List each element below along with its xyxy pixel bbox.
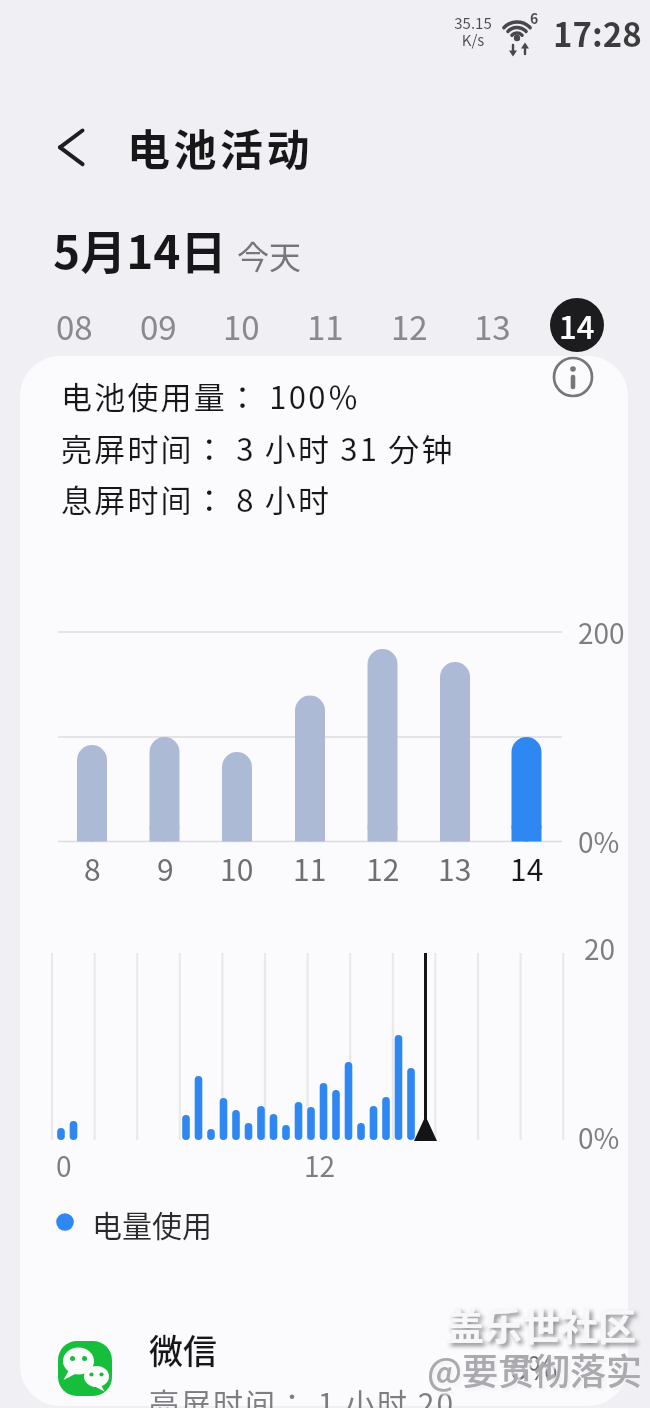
staticText: 35.15 K/s <box>454 12 492 50</box>
staticText: 盖乐世社区 <box>446 1296 637 1351</box>
button[interactable]: 14 <box>550 298 604 352</box>
staticText: 10 <box>223 302 260 350</box>
button[interactable] <box>48 124 94 170</box>
staticText: 电池活动 <box>127 116 313 178</box>
staticText: 5月14日 <box>53 216 227 283</box>
staticText: 0 <box>56 1145 72 1186</box>
staticText: 0% <box>578 1117 620 1158</box>
staticText: 6 <box>530 8 539 28</box>
staticText: 13 <box>474 302 511 350</box>
button[interactable]: 08 <box>0 281 224 371</box>
button[interactable]: 12 <box>259 281 559 371</box>
staticText: @要贯彻落实 <box>427 1343 642 1395</box>
staticText: 亮屏时间： 3 小时 31 分钟 <box>61 425 455 470</box>
staticText: 电池使用量： 100％ <box>61 373 361 418</box>
staticText: 电量使用 <box>92 1202 212 1245</box>
staticText: 微信 <box>149 1325 217 1374</box>
staticText: 20 <box>584 928 616 969</box>
staticText: 13 <box>438 846 472 889</box>
staticText: 9 <box>157 846 174 889</box>
staticText: 息屏时间： 8 小时 <box>61 476 332 521</box>
staticText: 8 <box>84 846 101 889</box>
button[interactable]: 11 <box>175 281 475 371</box>
button[interactable] <box>40 1330 620 1406</box>
staticText: 11 <box>293 846 327 889</box>
button[interactable]: 13 <box>342 281 642 371</box>
staticText: 12 <box>304 1145 336 1186</box>
button[interactable]: 10 <box>91 281 391 371</box>
staticText: 14 <box>510 846 544 889</box>
button[interactable]: 09 <box>8 281 308 371</box>
staticText: 17:28 <box>553 9 642 57</box>
staticText: 0% <box>578 821 620 862</box>
staticText: 亮屏时间： 1 小时 20 <box>149 1380 456 1408</box>
staticText: 08 <box>56 302 93 350</box>
staticText: 6% <box>509 1342 558 1390</box>
button[interactable] <box>551 355 595 399</box>
staticText: 12 <box>366 846 400 889</box>
staticText: 12 <box>391 302 428 350</box>
staticText: 09 <box>140 302 177 350</box>
staticText: 今天 <box>237 232 302 278</box>
staticText: 200 <box>578 612 625 653</box>
staticText: 14 <box>559 303 595 348</box>
staticText: 11 <box>307 302 344 350</box>
staticText: 10 <box>220 846 254 889</box>
